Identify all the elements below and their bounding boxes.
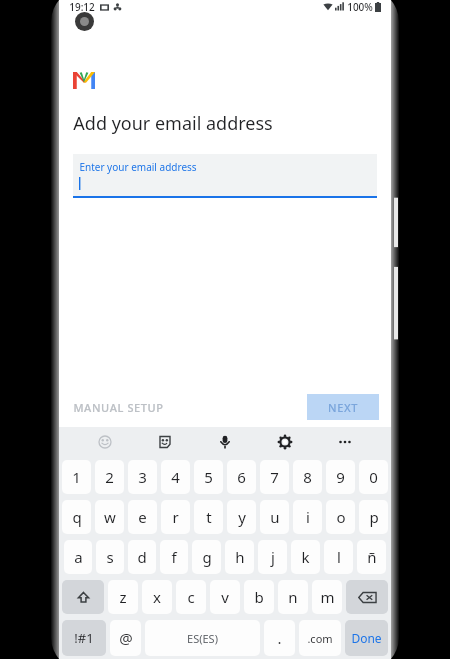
staticText: f <box>171 547 177 567</box>
button[interactable]: MANUAL SETUP <box>71 394 166 421</box>
button[interactable]: Done <box>345 620 388 656</box>
button[interactable]: t <box>194 500 223 534</box>
staticText: .com <box>307 631 333 646</box>
staticText: g <box>202 547 212 567</box>
button[interactable]: v <box>210 580 240 614</box>
staticText: NEXT <box>328 400 358 415</box>
staticText: o <box>336 507 346 527</box>
button[interactable]: q <box>62 500 91 534</box>
staticText: h <box>235 547 245 567</box>
button[interactable]: h <box>225 540 254 574</box>
button[interactable]: 6 <box>227 460 256 494</box>
staticText: j <box>271 547 275 567</box>
staticText: z <box>119 587 127 607</box>
staticText: 4 <box>171 467 180 487</box>
button[interactable]: a <box>64 540 92 574</box>
staticText: Done <box>351 630 382 646</box>
button[interactable]: 0 <box>359 460 388 494</box>
staticText: 0 <box>369 467 378 487</box>
staticText: 100% <box>347 0 373 14</box>
button[interactable]: Backspace <box>346 580 388 614</box>
button[interactable]: y <box>227 500 256 534</box>
staticText: a <box>74 547 83 567</box>
button[interactable]: e <box>128 500 157 534</box>
button[interactable]: b <box>244 580 274 614</box>
staticText: p <box>369 507 379 527</box>
button[interactable]: 7 <box>260 460 289 494</box>
button[interactable]: 2 <box>95 460 124 494</box>
button[interactable]: l <box>324 540 353 574</box>
staticText: Enter your email address <box>79 160 197 174</box>
button[interactable]: s <box>96 540 124 574</box>
button[interactable]: x <box>142 580 172 614</box>
button[interactable]: j <box>258 540 287 574</box>
button[interactable]: Shift <box>62 580 104 614</box>
staticText: q <box>72 507 82 527</box>
button[interactable]: o <box>326 500 355 534</box>
button[interactable]: .com <box>299 620 341 656</box>
button[interactable]: @ <box>110 620 141 656</box>
button[interactable]: k <box>291 540 320 574</box>
staticText: w <box>104 507 116 527</box>
button[interactable]: ES(ES) <box>145 620 260 656</box>
staticText: 5 <box>204 467 213 487</box>
button[interactable]: Settings <box>271 428 299 456</box>
button[interactable]: Emoji <box>91 428 119 456</box>
button[interactable]: 3 <box>128 460 157 494</box>
staticText: 6 <box>237 467 246 487</box>
button[interactable]: More options <box>331 428 359 456</box>
staticText: b <box>254 587 264 607</box>
button[interactable]: 5 <box>194 460 223 494</box>
staticText: u <box>270 507 280 527</box>
button[interactable]: p <box>359 500 388 534</box>
button[interactable]: Enter your email address <box>73 154 377 196</box>
button[interactable]: 4 <box>161 460 190 494</box>
button[interactable]: !#1 <box>62 620 106 656</box>
button[interactable]: m <box>312 580 342 614</box>
button[interactable]: f <box>160 540 188 574</box>
staticText: ES(ES) <box>187 631 218 646</box>
staticText: y <box>238 507 246 527</box>
button[interactable]: NEXT <box>307 394 379 420</box>
staticText: 7 <box>270 467 279 487</box>
staticText: i <box>306 507 310 527</box>
staticText: 2 <box>105 467 114 487</box>
staticText: t <box>206 507 212 527</box>
staticText: r <box>172 507 179 527</box>
staticText: v <box>221 587 229 607</box>
staticText: d <box>137 547 147 567</box>
button[interactable]: u <box>260 500 289 534</box>
button[interactable]: n <box>278 580 308 614</box>
button[interactable]: Stickers <box>151 428 179 456</box>
staticText: x <box>153 587 161 607</box>
button[interactable]: Voice input <box>211 428 239 456</box>
button[interactable]: g <box>192 540 221 574</box>
button[interactable]: c <box>176 580 206 614</box>
staticText: 8 <box>303 467 312 487</box>
staticText: MANUAL SETUP <box>73 400 164 415</box>
staticText: !#1 <box>74 629 94 647</box>
button[interactable]: ñ <box>357 540 386 574</box>
button[interactable]: 8 <box>293 460 322 494</box>
staticText: . <box>277 628 282 648</box>
staticText: 1 <box>72 467 81 487</box>
staticText: e <box>138 507 147 527</box>
staticText: s <box>106 547 114 567</box>
staticText: Add your email address <box>73 111 273 136</box>
staticText: 9 <box>336 467 345 487</box>
button[interactable]: r <box>161 500 190 534</box>
button[interactable]: 1 <box>62 460 91 494</box>
staticText: 3 <box>138 467 147 487</box>
button[interactable]: z <box>108 580 138 614</box>
button[interactable]: d <box>128 540 156 574</box>
button[interactable]: 9 <box>326 460 355 494</box>
staticText: n <box>288 587 298 607</box>
staticText: m <box>320 587 335 607</box>
staticText: c <box>187 587 195 607</box>
button[interactable]: i <box>293 500 322 534</box>
staticText: ñ <box>367 547 377 567</box>
staticText: k <box>301 547 310 567</box>
staticText: @ <box>119 628 133 648</box>
button[interactable]: . <box>264 620 295 656</box>
button[interactable]: w <box>95 500 124 534</box>
